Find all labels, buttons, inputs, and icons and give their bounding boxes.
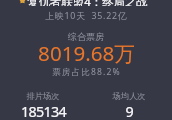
button[interactable]: 场均人次 [86,91,172,120]
button[interactable]: Favourite [19,0,26,4]
staticText: 185134 [21,102,66,120]
staticText: 35.22亿 [91,10,128,22]
staticText: 场均人次 [112,91,146,101]
button[interactable]: 排片场次 [0,91,86,120]
button[interactable]: 复仇者联盟4：终局之战 [0,0,172,6]
staticText: 复仇者联盟4：终局之战 [27,0,148,6]
staticText: 排片场次 [26,91,60,101]
staticText: 票房占比88.2% [52,66,121,78]
staticText: 9 [125,102,134,120]
staticText: 综合票房 [68,31,104,42]
staticText: 上映10天 [45,10,86,22]
staticText: 8019.68万 [38,39,135,67]
